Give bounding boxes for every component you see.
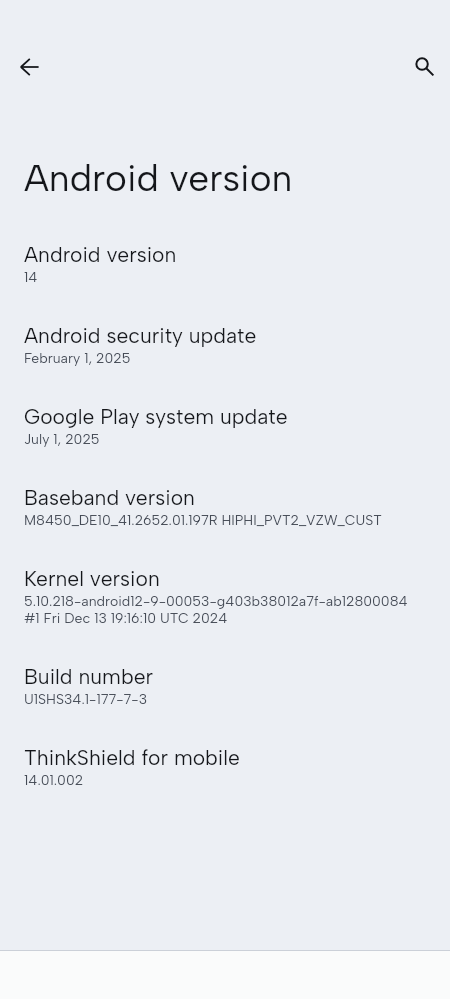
staticText: ThinkShield for mobile [24,745,240,770]
staticText: July 1, 2025 [24,431,100,448]
staticText: Kernel version [24,566,160,591]
staticText: Android version [24,242,177,267]
staticText: U1SHS34.1-177-7-3 [24,691,148,708]
button[interactable]: Search settings [400,42,448,90]
button[interactable]: Kernel version [0,529,450,627]
staticText: #1 Fri Dec 13 19:16:10 UTC 2024 [24,610,228,627]
staticText: Google Play system update [24,404,288,429]
button[interactable]: Android security update [0,286,450,367]
button[interactable]: Build number [0,627,450,708]
button[interactable]: Android version [0,242,450,286]
staticText: Android version [24,156,293,200]
staticText: Build number [24,664,154,689]
staticText: Baseband version [24,485,195,510]
button[interactable]: Navigate up [7,43,55,91]
staticText: Android security update [24,323,257,348]
button[interactable]: Baseband version [0,448,450,529]
staticText: 14.01.002 [24,772,84,789]
staticText: 5.10.218-android12-9-00053-g403b38012a7f… [24,593,408,610]
button[interactable]: Google Play system update [0,367,450,448]
staticText: 14 [24,269,38,286]
staticText: February 1, 2025 [24,350,131,367]
staticText: M8450_DE10_41.2652.01.197R HIPHI_PVT2_VZ… [24,512,382,529]
button[interactable]: ThinkShield for mobile [0,708,450,789]
